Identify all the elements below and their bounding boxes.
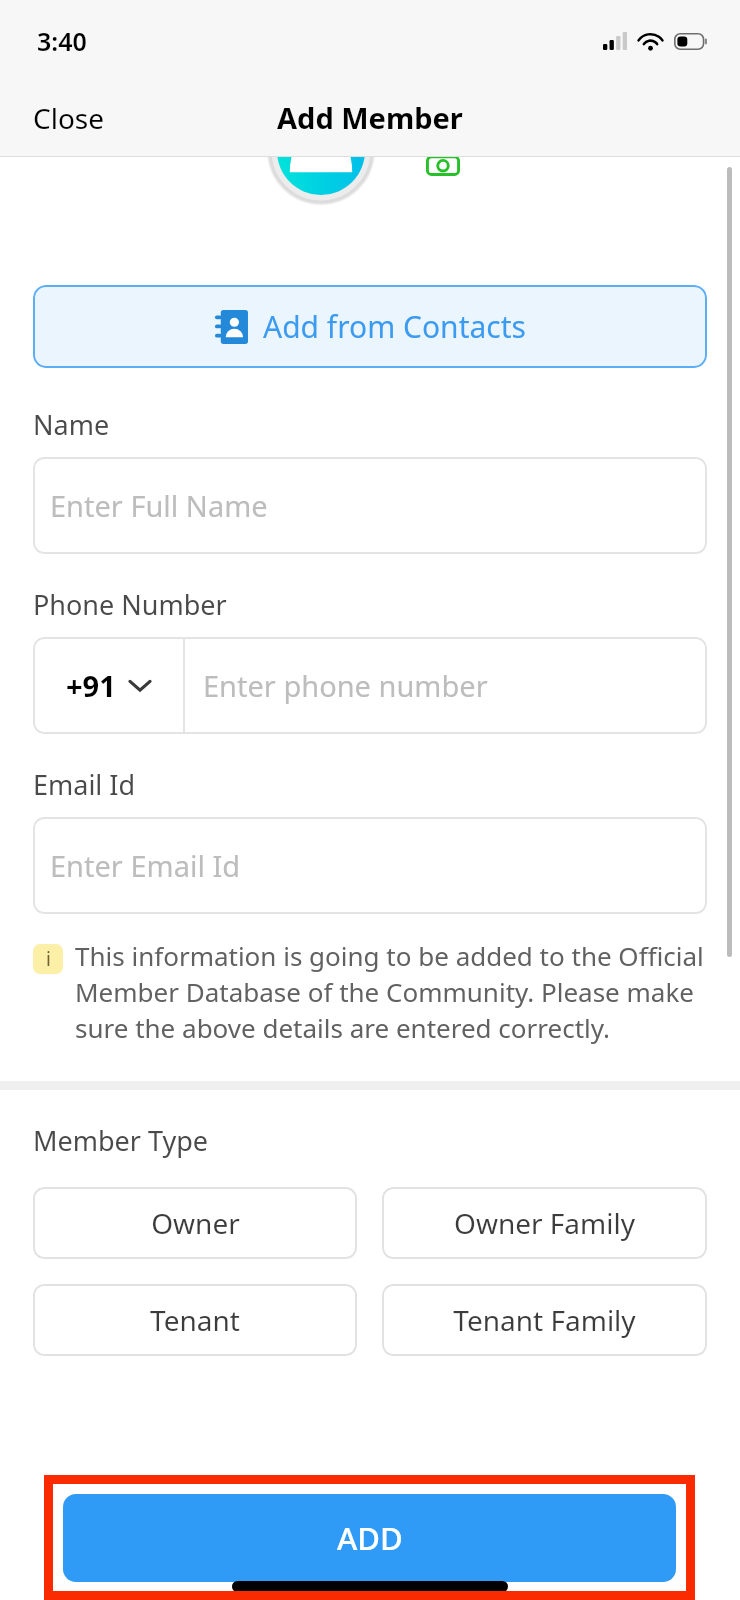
staticText: ADD [337,1517,403,1559]
staticText: Enter Full Name [50,486,268,525]
button[interactable]: ADD [63,1494,676,1582]
staticText: Phone Number [33,586,227,623]
staticText: Owner Family [454,1204,635,1242]
staticText: Name [33,406,110,443]
staticText: 3:40 [37,24,87,58]
staticText: Email Id [33,766,136,803]
staticText: +91 [66,666,116,705]
button[interactable]: Close [0,89,138,147]
staticText: Tenant Family [453,1301,636,1339]
button[interactable]: +91 [33,637,183,734]
button[interactable]: Tenant [33,1284,357,1356]
staticText: This information is going to be added to… [75,938,707,1046]
staticText: Enter Email Id [50,846,241,885]
button[interactable]: Owner Family [382,1187,707,1259]
staticText: Add Member [277,98,463,137]
staticText: Close [33,99,105,137]
button[interactable]: Enter Email Id [33,817,707,914]
staticText: i [46,946,51,972]
button[interactable]: Owner [33,1187,357,1259]
button[interactable]: Change photo [409,157,477,199]
staticText: Tenant [150,1301,240,1339]
button[interactable]: Tenant Family [382,1284,707,1356]
staticText: Owner [151,1204,240,1242]
staticText: Member Type [33,1122,209,1159]
staticText: Enter phone number [203,666,488,705]
button[interactable]: Enter phone number [185,637,707,734]
staticText: Add from Contacts [263,306,526,347]
button[interactable]: Enter Full Name [33,457,707,554]
button[interactable]: Add from Contacts [33,285,707,368]
